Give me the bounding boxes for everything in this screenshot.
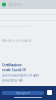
staticText: Certificazione	[2, 63, 22, 67]
button[interactable]: dgc.gov.it	[2, 91, 44, 95]
button[interactable]: Tabs	[47, 90, 52, 95]
staticText: Ministero della Salute	[2, 39, 32, 42]
staticText: Lorem ipsum dolor sit amet	[2, 74, 39, 77]
staticText: verde Covid-19	[2, 68, 26, 72]
staticText: dgc.gov.it	[16, 91, 30, 95]
staticText: dgc.gov.it	[8, 3, 22, 6]
staticText: consectetur adi	[2, 79, 23, 82]
